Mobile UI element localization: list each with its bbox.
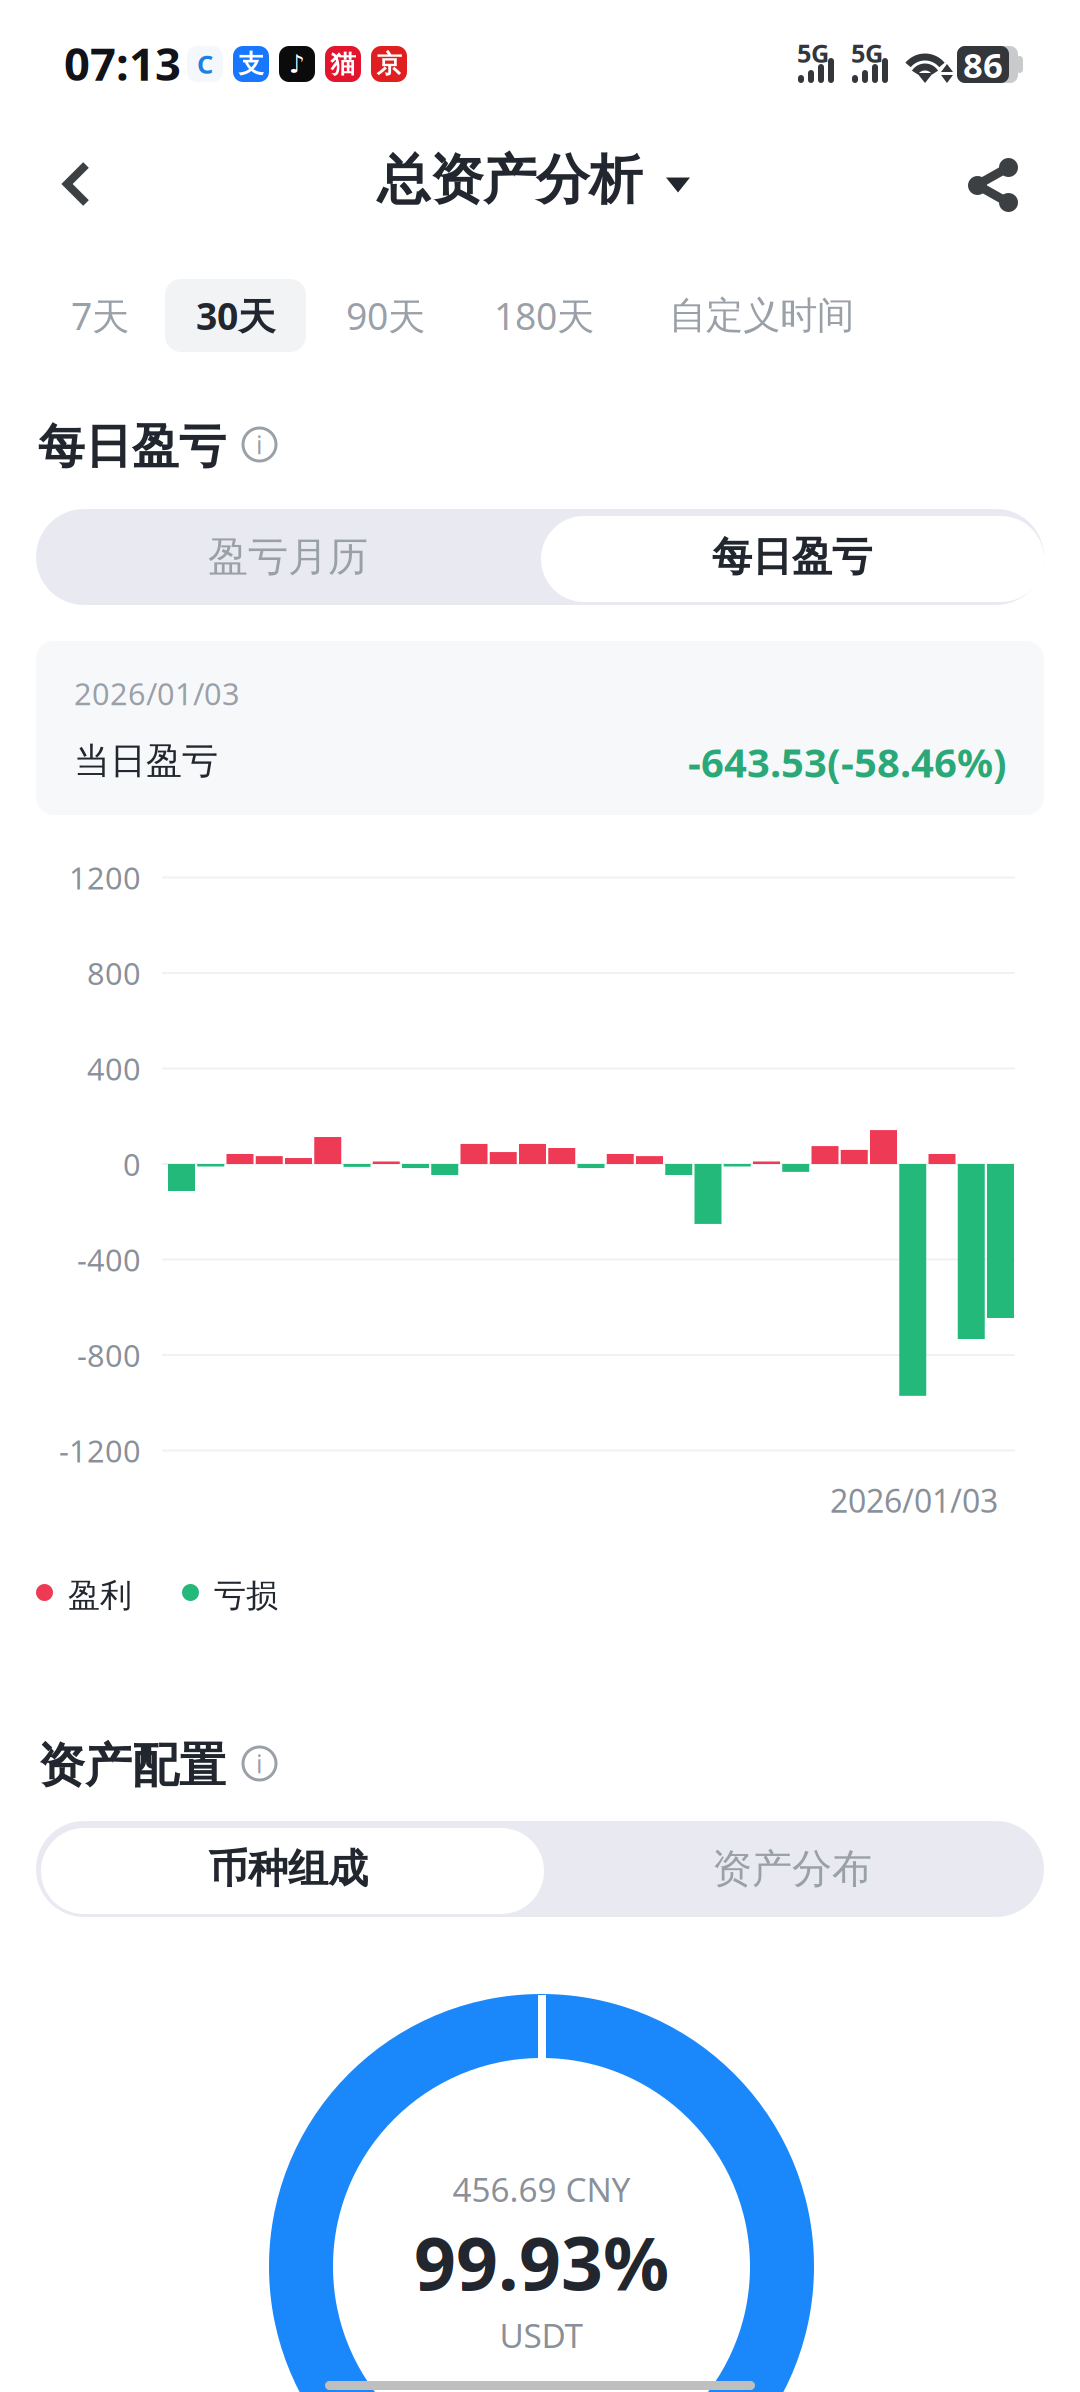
staticText: USDT: [499, 2313, 583, 2357]
button[interactable]: 7天: [40, 279, 160, 352]
button[interactable]: Back: [31, 138, 123, 230]
staticText: i: [256, 1747, 263, 1780]
staticText: 每日盈亏: [712, 532, 872, 581]
staticText: 自定义时间: [669, 293, 854, 338]
button[interactable]: Share: [947, 139, 1039, 231]
staticText: 2026/01/03: [830, 1479, 998, 1521]
button[interactable]: 资产分布: [540, 1821, 1044, 1917]
staticText: 30天: [196, 291, 275, 340]
staticText: 支: [238, 48, 263, 79]
staticText: 5G: [797, 36, 829, 70]
staticText: 400: [87, 1048, 141, 1089]
staticText: 币种组成: [208, 1844, 368, 1893]
staticText: -643.53(-58.46%): [688, 735, 1007, 788]
staticText: 1200: [69, 857, 141, 898]
staticText: 盈利: [68, 1576, 132, 1615]
staticText: 资产配置: [38, 1737, 226, 1794]
staticText: 07:13: [64, 33, 181, 93]
staticText: ♪: [289, 50, 305, 78]
staticText: 当日盈亏: [74, 739, 218, 783]
staticText: 猫: [330, 48, 355, 79]
staticText: i: [256, 428, 263, 461]
button[interactable]: 30天: [165, 279, 306, 352]
button[interactable]: 180天: [463, 279, 625, 352]
button[interactable]: 币种组成: [36, 1821, 540, 1917]
button[interactable]: 总资产分析: [377, 142, 690, 218]
button[interactable]: 自定义时间: [638, 279, 885, 352]
button[interactable]: 90天: [315, 279, 456, 352]
staticText: 每日盈亏: [38, 418, 226, 475]
staticText: 7天: [71, 291, 129, 340]
button[interactable]: 每日盈亏: [540, 509, 1044, 605]
staticText: 180天: [494, 291, 594, 340]
staticText: -800: [77, 1335, 141, 1375]
staticText: 京: [376, 48, 401, 79]
staticText: 总资产分析: [377, 147, 642, 213]
button[interactable]: 盈亏月历: [36, 509, 540, 605]
staticText: C: [197, 47, 213, 81]
staticText: -1200: [59, 1430, 141, 1471]
staticText: 90天: [346, 291, 425, 340]
staticText: -400: [77, 1239, 141, 1280]
staticText: 800: [87, 953, 141, 993]
staticText: 456.69 CNY: [452, 2167, 630, 2211]
staticText: 0: [123, 1144, 141, 1184]
staticText: 2026/01/03: [74, 673, 240, 714]
staticText: 99.93%: [414, 2213, 669, 2311]
staticText: 亏损: [214, 1576, 278, 1615]
staticText: 资产分布: [712, 1844, 872, 1893]
staticText: 盈亏月历: [208, 532, 368, 581]
staticText: 5G: [851, 36, 883, 70]
staticText: 86: [963, 41, 1003, 87]
